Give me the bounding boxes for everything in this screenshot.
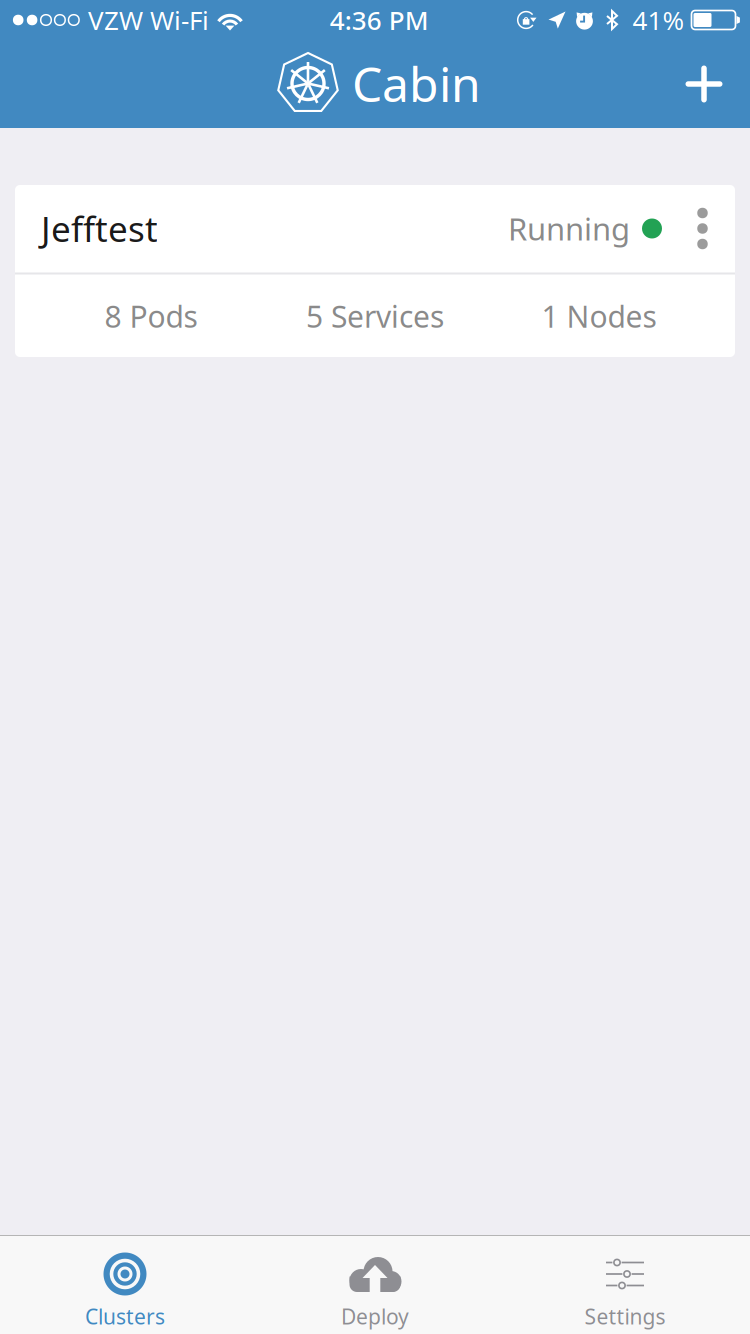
staticText: 4:36 PM bbox=[330, 2, 429, 38]
staticText: Deploy bbox=[341, 1302, 409, 1331]
button[interactable]: Jefftest bbox=[15, 184, 735, 272]
button[interactable]: Settings bbox=[500, 1236, 750, 1334]
staticText: Settings bbox=[584, 1302, 665, 1331]
staticText: 5 Services bbox=[306, 296, 444, 336]
staticText: Jefftest bbox=[41, 205, 158, 252]
staticText: 1 Nodes bbox=[541, 296, 656, 336]
staticText: Cabin bbox=[352, 51, 481, 116]
button[interactable]: Clusters bbox=[0, 1236, 250, 1334]
staticText: 8 Pods bbox=[104, 296, 197, 336]
button[interactable]: Deploy bbox=[250, 1236, 500, 1334]
staticText: 41% bbox=[632, 2, 684, 38]
staticText: VZW Wi-Fi bbox=[88, 2, 209, 38]
button[interactable]: Add cluster bbox=[661, 40, 750, 128]
staticText: Running bbox=[508, 207, 630, 250]
staticText: Clusters bbox=[85, 1302, 165, 1331]
